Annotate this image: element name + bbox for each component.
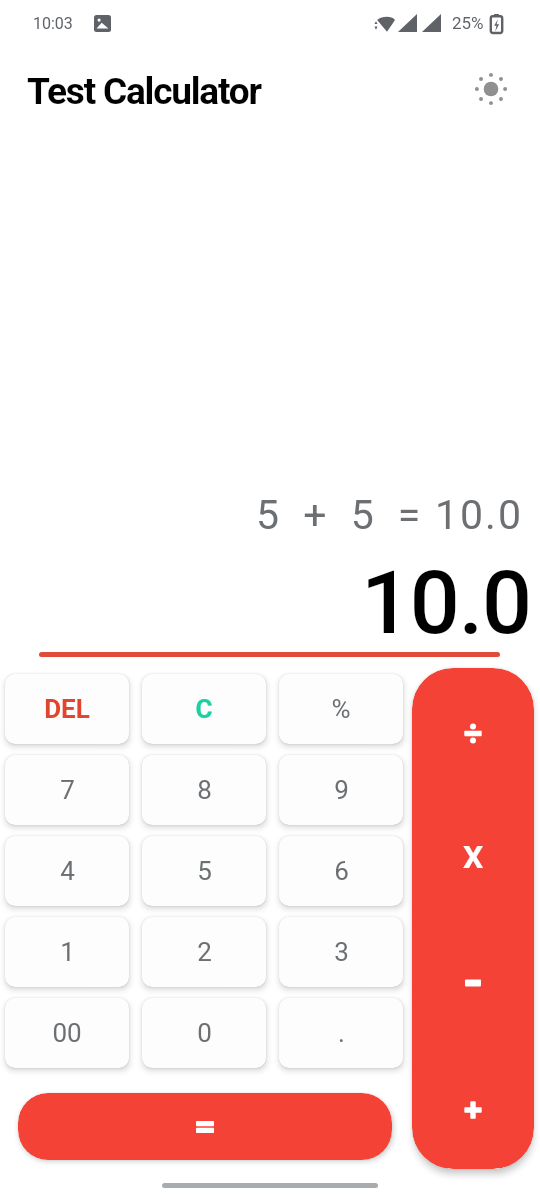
staticText: 10.0 [361, 551, 531, 654]
button[interactable]: Toggle theme [467, 65, 515, 113]
staticText: 10:03 [33, 14, 73, 33]
staticText: 2 [197, 937, 212, 967]
button[interactable]: Divide [412, 668, 534, 794]
staticText: . [338, 1018, 345, 1048]
button[interactable]: . [279, 998, 403, 1068]
staticText: 9 [334, 775, 349, 805]
button[interactable]: Multiply [412, 794, 534, 919]
button[interactable]: 9 [279, 755, 403, 825]
staticText: 8 [197, 775, 212, 805]
staticText: X [463, 838, 484, 876]
other: Equals [193, 1115, 217, 1139]
button[interactable]: 3 [279, 917, 403, 987]
staticText: 00 [52, 1018, 82, 1048]
button[interactable]: 1 [5, 917, 129, 987]
staticText: 0 [197, 1018, 212, 1048]
button[interactable]: 0 [142, 998, 266, 1068]
staticText: 3 [334, 937, 349, 967]
staticText: DEL [44, 694, 90, 724]
button[interactable]: DEL [5, 674, 129, 744]
staticText: 25% [452, 13, 484, 33]
button[interactable]: % [279, 674, 403, 744]
button[interactable]: Equals [18, 1093, 392, 1160]
staticText: 4 [60, 856, 75, 886]
button[interactable]: 7 [5, 755, 129, 825]
button[interactable]: 6 [279, 836, 403, 906]
staticText: 6 [334, 856, 349, 886]
button[interactable]: 5 [142, 836, 266, 906]
button[interactable]: C [142, 674, 266, 744]
button[interactable]: Subtract [412, 919, 534, 1044]
staticText: Test Calculator [27, 70, 261, 113]
button[interactable]: 4 [5, 836, 129, 906]
staticText: 10.0 [435, 491, 523, 539]
button[interactable]: 2 [142, 917, 266, 987]
staticText: 5 [197, 856, 212, 886]
staticText: 1 [60, 937, 75, 967]
staticText: % [331, 694, 351, 724]
staticText: 7 [60, 775, 75, 805]
button[interactable]: 00 [5, 998, 129, 1068]
button[interactable]: Add [412, 1044, 534, 1169]
staticText: C [195, 694, 213, 724]
staticText: 5 + 5 = [256, 491, 428, 539]
button[interactable]: 8 [142, 755, 266, 825]
